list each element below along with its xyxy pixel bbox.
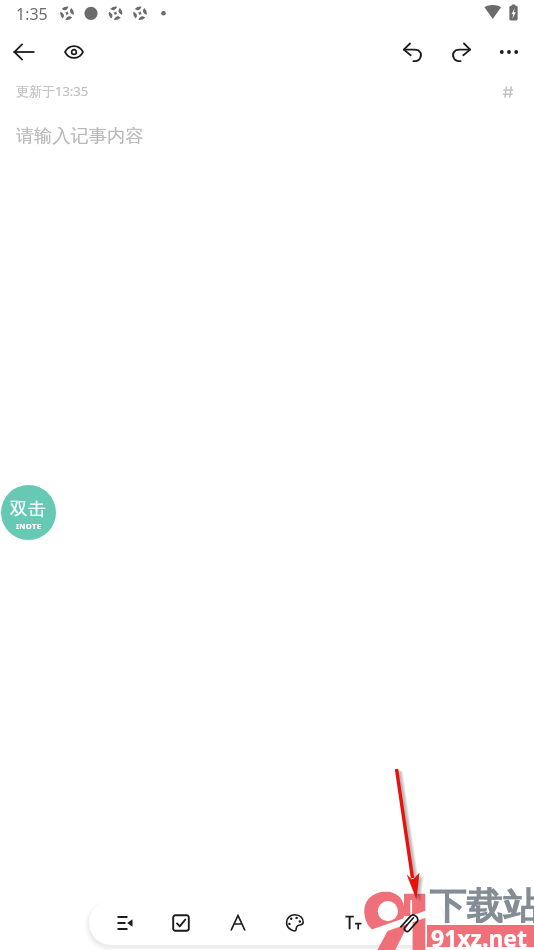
button[interactable]: Redo bbox=[438, 29, 484, 75]
button[interactable]: Back bbox=[1, 29, 47, 75]
button[interactable]: Font bbox=[215, 900, 260, 945]
button[interactable]: Color palette bbox=[272, 900, 317, 945]
button[interactable]: Text size bbox=[331, 900, 376, 945]
button[interactable]: 双击 bbox=[1, 485, 56, 540]
button[interactable]: Attach file bbox=[387, 900, 432, 945]
button[interactable]: Format list bbox=[102, 900, 147, 945]
staticText: 请输入记事内容 bbox=[16, 124, 144, 147]
staticText: 双击 bbox=[10, 498, 47, 520]
button[interactable]: Preview bbox=[51, 29, 97, 75]
staticText: 更新于13:35 bbox=[16, 82, 89, 100]
staticText: 91xz.net bbox=[431, 922, 528, 950]
button[interactable]: 请输入记事内容 bbox=[16, 107, 534, 163]
button[interactable]: Undo bbox=[390, 29, 436, 75]
button[interactable]: More options bbox=[486, 29, 532, 75]
button[interactable]: Tag bbox=[494, 78, 522, 106]
staticText: 下载站 bbox=[429, 883, 534, 923]
staticText: INOTE bbox=[16, 521, 42, 531]
staticText: 1:35 bbox=[16, 3, 48, 25]
button[interactable]: Checklist bbox=[158, 900, 203, 945]
